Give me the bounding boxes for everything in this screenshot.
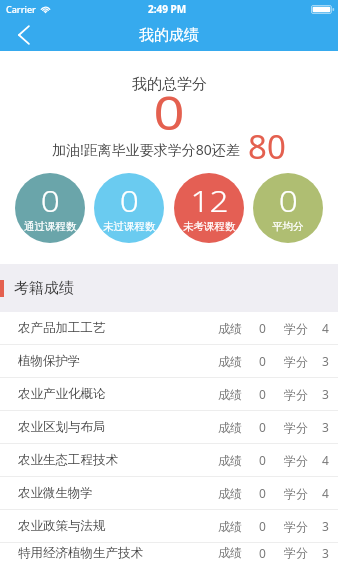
- button[interactable]: 农产品加工工艺: [0, 312, 338, 344]
- staticText: 我的成绩: [139, 26, 199, 45]
- button[interactable]: 0: [15, 173, 85, 243]
- staticText: 0: [259, 320, 266, 336]
- staticText: 0: [279, 181, 298, 220]
- button[interactable]: 0: [94, 173, 164, 243]
- staticText: 农产品加工工艺: [18, 320, 106, 336]
- staticText: 3: [322, 545, 329, 561]
- button[interactable]: 农业产业化概论: [0, 378, 338, 410]
- staticText: 农业区划与布局: [18, 419, 106, 435]
- staticText: 学分: [284, 519, 308, 534]
- staticText: 4: [322, 320, 329, 336]
- staticText: 特用经济植物生产技术: [18, 545, 143, 561]
- button[interactable]: 农业区划与布局: [0, 411, 338, 443]
- staticText: 2:49 PM: [148, 2, 187, 16]
- staticText: 考籍成绩: [14, 279, 74, 298]
- staticText: 成绩: [218, 453, 242, 468]
- staticText: 成绩: [218, 321, 242, 336]
- staticText: 我的总学分: [132, 75, 207, 94]
- staticText: 学分: [284, 453, 308, 468]
- staticText: 成绩: [218, 354, 242, 369]
- staticText: 12: [190, 181, 229, 220]
- staticText: 成绩: [218, 486, 242, 501]
- button[interactable]: 12: [174, 173, 244, 243]
- button[interactable]: 植物保护学: [0, 345, 338, 377]
- staticText: 成绩: [218, 519, 242, 534]
- staticText: 农业产业化概论: [18, 386, 106, 402]
- staticText: 农业生态工程技术: [18, 452, 118, 468]
- staticText: 未过课程数: [103, 220, 156, 233]
- staticText: 0: [154, 81, 185, 144]
- staticText: 4: [322, 485, 329, 501]
- button[interactable]: 农业微生物学: [0, 477, 338, 509]
- staticText: 3: [322, 386, 329, 402]
- button[interactable]: 特用经济植物生产技术: [0, 543, 338, 562]
- staticText: 0: [259, 353, 266, 369]
- staticText: 0: [259, 518, 266, 534]
- staticText: 成绩: [218, 387, 242, 402]
- staticText: 学分: [284, 420, 308, 435]
- button[interactable]: 农业生态工程技术: [0, 444, 338, 476]
- staticText: 0: [259, 545, 266, 561]
- staticText: 0: [259, 452, 266, 468]
- staticText: 成绩: [218, 420, 242, 435]
- staticText: 80: [248, 124, 286, 169]
- staticText: 植物保护学: [18, 353, 81, 369]
- staticText: 学分: [284, 387, 308, 402]
- staticText: Carrier: [6, 3, 36, 15]
- staticText: 通过课程数: [24, 220, 77, 233]
- staticText: 3: [322, 518, 329, 534]
- staticText: 农业微生物学: [18, 485, 93, 501]
- staticText: 成绩: [218, 545, 242, 560]
- button[interactable]: 农业政策与法规: [0, 510, 338, 542]
- button[interactable]: 0: [253, 173, 323, 243]
- staticText: 未考课程数: [183, 220, 236, 233]
- staticText: 0: [259, 419, 266, 435]
- staticText: 学分: [284, 354, 308, 369]
- staticText: 学分: [284, 486, 308, 501]
- staticText: 0: [259, 386, 266, 402]
- staticText: 农业政策与法规: [18, 518, 106, 534]
- staticText: 3: [322, 353, 329, 369]
- staticText: 0: [120, 181, 139, 220]
- staticText: 0: [259, 485, 266, 501]
- staticText: 学分: [284, 545, 308, 560]
- staticText: 3: [322, 419, 329, 435]
- button[interactable]: Back: [2, 18, 46, 51]
- staticText: 0: [41, 181, 60, 220]
- staticText: 4: [322, 452, 329, 468]
- staticText: 加油!距离毕业要求学分80还差: [52, 140, 240, 159]
- staticText: 学分: [284, 321, 308, 336]
- staticText: 平均分: [272, 220, 304, 233]
